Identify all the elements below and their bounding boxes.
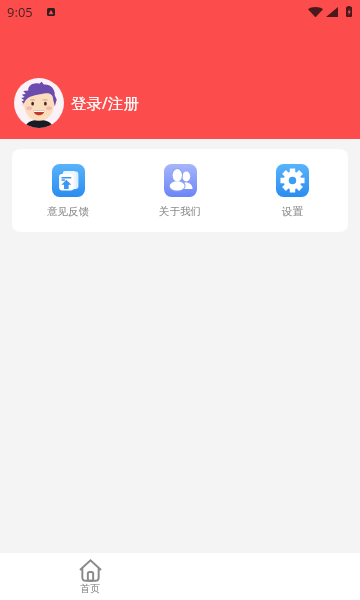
button[interactable]: 登录/注册 — [8, 72, 155, 134]
staticText: 登录/注册 — [71, 92, 139, 113]
button[interactable]: 意见反馈 — [12, 149, 124, 232]
button[interactable]: 设置 — [236, 149, 348, 232]
staticText: 关于我们 — [159, 205, 201, 218]
staticText: 设置 — [282, 205, 303, 218]
other: 首页 — [79, 559, 102, 582]
staticText: 9:05 — [7, 3, 33, 21]
button[interactable]: 关于我们 — [124, 149, 236, 232]
button[interactable]: 首页 — [0, 553, 180, 600]
staticText: 意见反馈 — [47, 205, 89, 218]
staticText: 首页 — [80, 582, 100, 595]
